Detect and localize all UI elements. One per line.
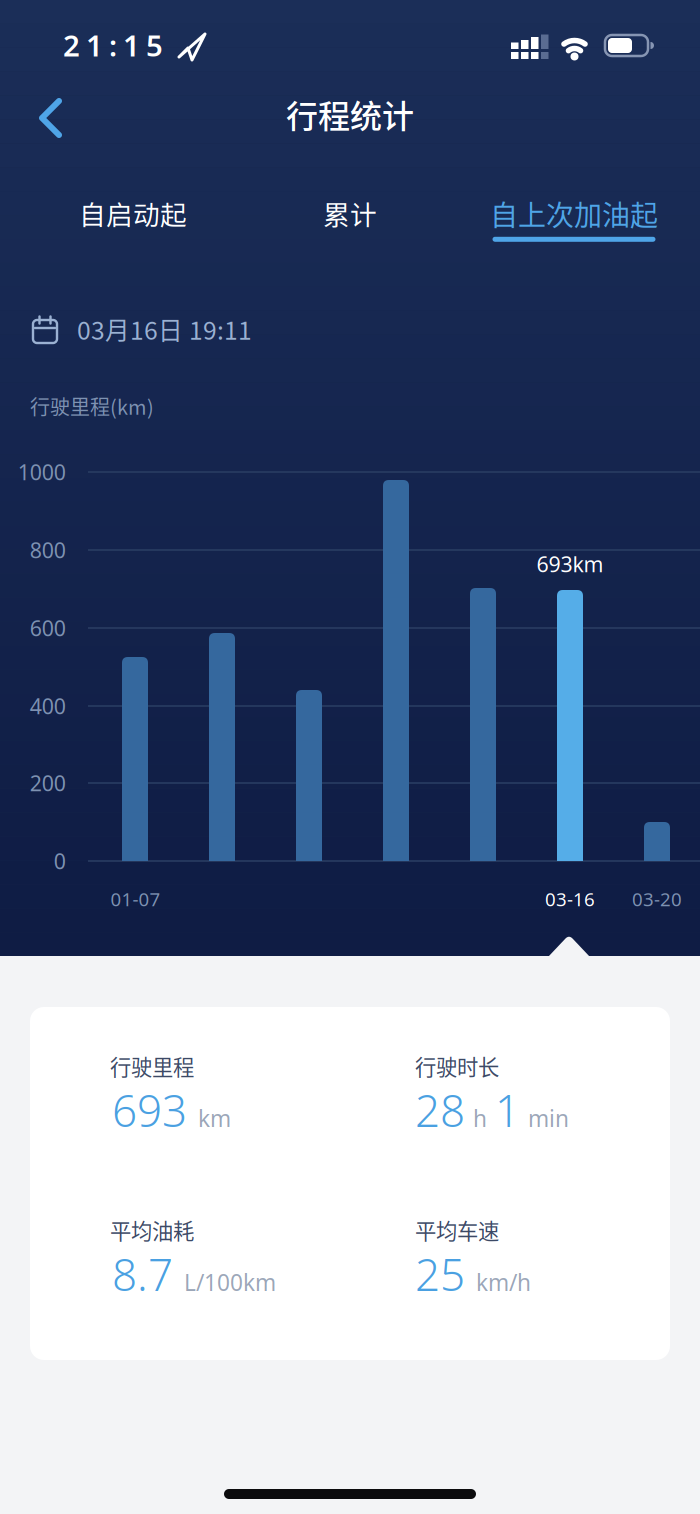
staticText: 行驶里程 bbox=[110, 1051, 194, 1081]
button[interactable]: 自启动起 bbox=[69, 184, 197, 242]
staticText: 800 bbox=[30, 536, 66, 564]
staticText: 03-20 bbox=[632, 887, 682, 911]
staticText: km/h bbox=[476, 1267, 531, 1297]
staticText: h bbox=[473, 1103, 487, 1133]
button[interactable]: 累计 bbox=[313, 184, 387, 242]
staticText: 1 bbox=[495, 1081, 520, 1139]
button[interactable]: 03月16日 19:11 bbox=[32, 307, 252, 351]
button[interactable]: Back bbox=[31, 92, 83, 144]
staticText: 行驶里程(km) bbox=[30, 391, 154, 420]
staticText: 自上次加油起 bbox=[490, 193, 658, 234]
staticText: 693km bbox=[536, 550, 603, 578]
staticText: 693 bbox=[112, 1081, 187, 1139]
button[interactable]: 自上次加油起 bbox=[490, 193, 658, 242]
staticText: 03月16日 19:11 bbox=[77, 311, 252, 347]
staticText: 自启动起 bbox=[79, 194, 187, 232]
staticText: km bbox=[198, 1103, 231, 1133]
staticText: 25 bbox=[415, 1245, 465, 1303]
staticText: 平均油耗 bbox=[110, 1215, 194, 1245]
staticText: 200 bbox=[30, 769, 66, 797]
staticText: min bbox=[528, 1103, 569, 1133]
staticText: 行程统计 bbox=[286, 91, 414, 137]
staticText: 03-16 bbox=[545, 887, 595, 911]
staticText: 21:15 bbox=[63, 25, 163, 64]
staticText: 行驶时长 bbox=[415, 1051, 499, 1081]
staticText: 600 bbox=[30, 614, 66, 642]
staticText: 平均车速 bbox=[415, 1215, 499, 1245]
staticText: 8.7 bbox=[112, 1245, 173, 1303]
staticText: 28 bbox=[415, 1081, 465, 1139]
staticText: 累计 bbox=[323, 194, 377, 232]
staticText: L/100km bbox=[184, 1267, 276, 1297]
staticText: 1000 bbox=[18, 458, 66, 486]
staticText: 0 bbox=[54, 847, 66, 875]
staticText: 01-07 bbox=[110, 887, 160, 911]
staticText: 400 bbox=[30, 692, 66, 720]
